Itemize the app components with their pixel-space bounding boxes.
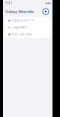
- staticText: ●●▮: [45, 1, 50, 4]
- staticText: Galaxy Wearable: [5, 9, 34, 14]
- button[interactable]: Account: [42, 8, 49, 15]
- button[interactable]: Add new device: [5, 31, 51, 38]
- button[interactable]: Galaxy Buds3 Pro: [5, 17, 51, 24]
- staticText: 9:41: [5, 1, 12, 5]
- staticText: Galaxy Buds3 Pro: [12, 19, 35, 22]
- staticText: Add new device: [12, 33, 33, 36]
- button[interactable]: Galaxy Watch7: [5, 24, 51, 31]
- staticText: Galaxy Watch7: [12, 26, 29, 29]
